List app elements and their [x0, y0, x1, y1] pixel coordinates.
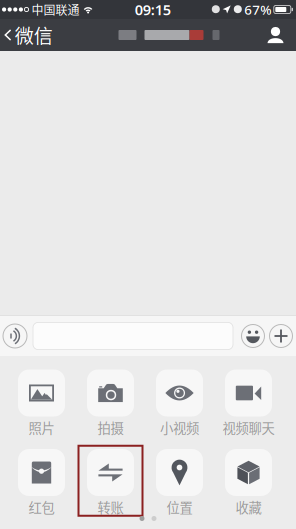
- staticText: 照片: [28, 418, 54, 437]
- staticText: 小视频: [160, 418, 199, 437]
- button[interactable]: 照片: [7, 369, 76, 433]
- button[interactable]: 位置: [145, 449, 214, 512]
- button[interactable]: 视频聊天: [214, 369, 283, 433]
- button[interactable]: 红包: [7, 449, 76, 512]
- staticText: 位置: [166, 497, 192, 517]
- button[interactable]: 小视频: [145, 369, 214, 433]
- button[interactable]: Voice message: [1, 319, 29, 353]
- button[interactable]: [33, 322, 233, 349]
- button[interactable]: More: [267, 319, 295, 353]
- staticText: 转账: [97, 497, 123, 517]
- staticText: 视频聊天: [222, 418, 274, 437]
- staticText: 收藏: [235, 497, 261, 517]
- staticText: 拍摄: [97, 418, 123, 437]
- staticText: 中国联通: [32, 1, 80, 18]
- staticText: 67%: [244, 1, 271, 18]
- button[interactable]: 收藏: [214, 449, 283, 512]
- button[interactable]: 转账: [76, 449, 145, 512]
- button[interactable]: Chat info: [261, 19, 289, 51]
- button[interactable]: Emoji: [239, 319, 267, 353]
- staticText: 09:15: [135, 0, 171, 19]
- button[interactable]: 微信: [0, 19, 61, 51]
- staticText: 红包: [28, 497, 54, 517]
- button[interactable]: 拍摄: [76, 369, 145, 433]
- staticText: 微信: [15, 21, 53, 49]
